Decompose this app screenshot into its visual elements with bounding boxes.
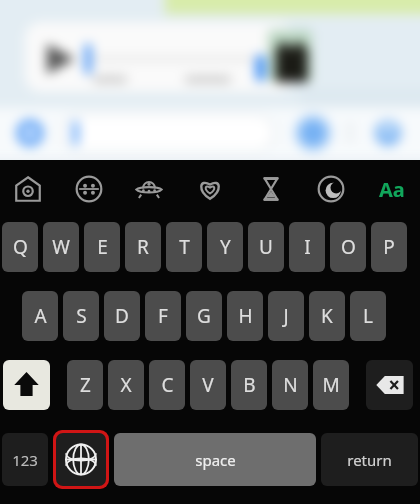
staticText: M bbox=[322, 372, 340, 398]
staticText: P bbox=[383, 234, 395, 260]
button[interactable]: Emoji bbox=[67, 169, 111, 209]
button[interactable]: O bbox=[330, 222, 366, 272]
button[interactable]: I bbox=[289, 222, 325, 272]
button[interactable]: Aa bbox=[370, 169, 414, 209]
staticText: N bbox=[283, 372, 298, 398]
button[interactable]: Recents bbox=[249, 169, 293, 209]
button[interactable]: G bbox=[186, 291, 222, 341]
button[interactable]: R bbox=[125, 222, 161, 272]
staticText: G bbox=[197, 303, 211, 329]
staticText: Aa bbox=[379, 176, 405, 203]
button[interactable]: D bbox=[104, 291, 140, 341]
staticText: B bbox=[243, 372, 256, 398]
button[interactable]: F bbox=[145, 291, 181, 341]
button[interactable]: L bbox=[350, 291, 386, 341]
button[interactable]: Z bbox=[67, 360, 103, 410]
staticText: X bbox=[120, 372, 132, 398]
staticText: T bbox=[179, 234, 190, 260]
button[interactable]: M bbox=[313, 360, 349, 410]
button[interactable]: 123 bbox=[2, 433, 48, 486]
staticText: space bbox=[195, 450, 236, 470]
button[interactable]: Memoji bbox=[127, 169, 171, 209]
button[interactable]: J bbox=[268, 291, 304, 341]
staticText: L bbox=[363, 303, 373, 329]
button[interactable]: Switch keyboard bbox=[56, 433, 106, 486]
button[interactable]: S bbox=[63, 291, 99, 341]
staticText: Z bbox=[80, 372, 91, 398]
staticText: O bbox=[341, 234, 356, 260]
staticText: J bbox=[283, 303, 289, 329]
button[interactable]: Backspace bbox=[366, 360, 413, 410]
staticText: C bbox=[161, 372, 174, 398]
button[interactable]: X bbox=[108, 360, 144, 410]
button[interactable]: Y bbox=[207, 222, 243, 272]
staticText: K bbox=[321, 303, 333, 329]
button[interactable]: K bbox=[309, 291, 345, 341]
staticText: S bbox=[76, 303, 87, 329]
button[interactable]: Stickers bbox=[6, 169, 50, 209]
button[interactable]: Q bbox=[2, 222, 38, 272]
button[interactable]: A bbox=[22, 291, 58, 341]
button[interactable]: C bbox=[149, 360, 185, 410]
staticText: F bbox=[158, 303, 168, 329]
button[interactable]: U bbox=[248, 222, 284, 272]
button[interactable]: Shift bbox=[3, 360, 50, 410]
button[interactable]: N bbox=[272, 360, 308, 410]
staticText: U bbox=[259, 234, 273, 260]
staticText: A bbox=[34, 303, 47, 329]
staticText: R bbox=[137, 234, 149, 260]
button[interactable]: W bbox=[43, 222, 79, 272]
button[interactable]: return bbox=[321, 433, 418, 486]
button[interactable]: T bbox=[166, 222, 202, 272]
staticText: 123 bbox=[12, 450, 38, 470]
staticText: Y bbox=[220, 234, 231, 260]
staticText: H bbox=[238, 303, 253, 329]
button[interactable]: V bbox=[190, 360, 226, 410]
staticText: V bbox=[202, 372, 214, 398]
staticText: I bbox=[304, 234, 311, 260]
button[interactable]: space bbox=[114, 433, 316, 486]
button[interactable]: P bbox=[371, 222, 407, 272]
staticText: W bbox=[52, 234, 70, 260]
button[interactable]: Clock bbox=[309, 169, 353, 209]
staticText: E bbox=[97, 234, 108, 260]
button[interactable]: H bbox=[227, 291, 263, 341]
staticText: D bbox=[115, 303, 129, 329]
staticText: Q bbox=[13, 234, 28, 260]
button[interactable]: Favorites bbox=[188, 169, 232, 209]
staticText: return bbox=[347, 450, 392, 470]
button[interactable]: B bbox=[231, 360, 267, 410]
button[interactable]: E bbox=[84, 222, 120, 272]
